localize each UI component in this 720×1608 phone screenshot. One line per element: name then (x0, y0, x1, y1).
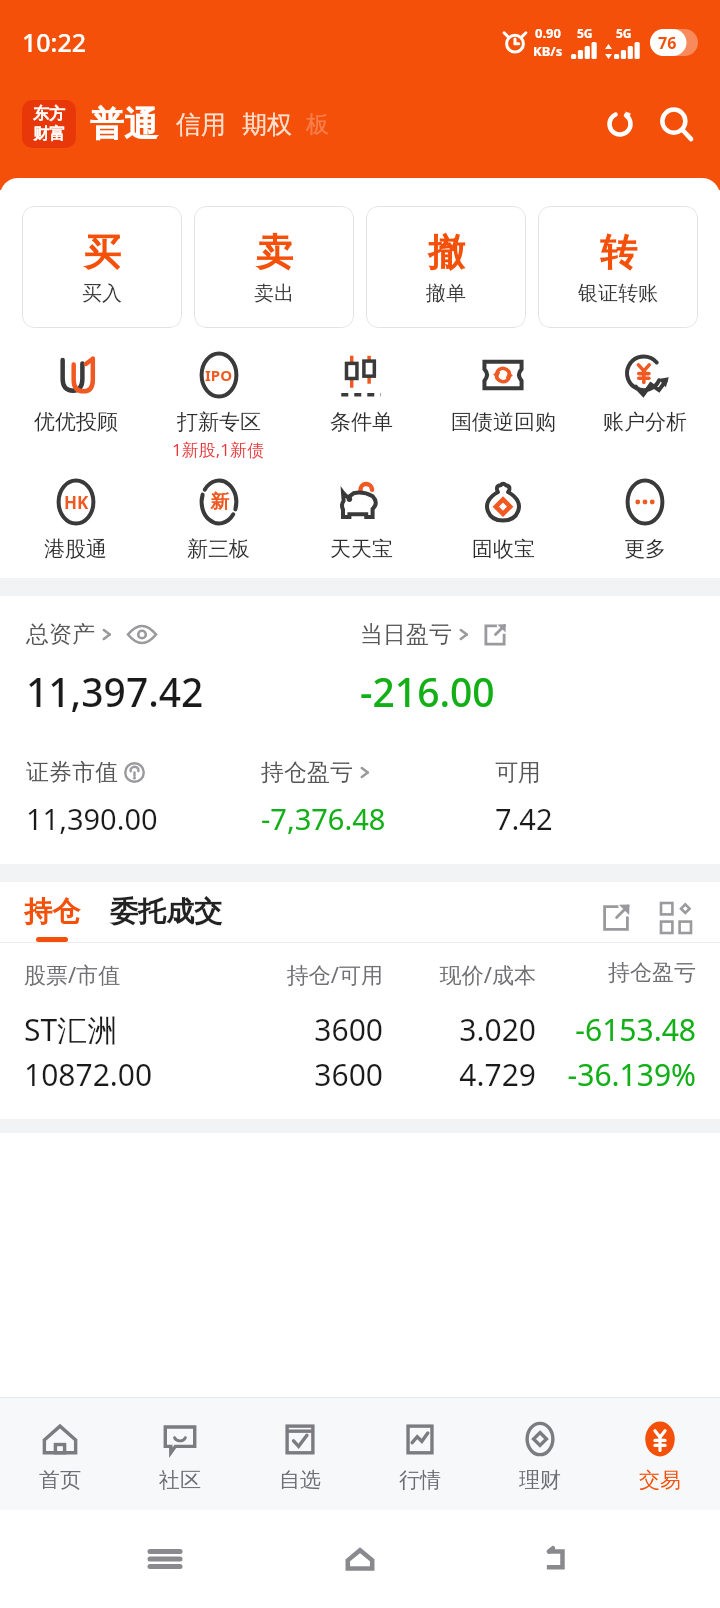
button[interactable]: ST汇洲 (0, 1009, 720, 1095)
staticText: 卖出 (254, 281, 294, 306)
staticText: 7.42 (495, 799, 553, 838)
staticText: 信用 (176, 109, 226, 140)
staticText: 买入 (82, 281, 122, 306)
staticText: 期权 (242, 109, 292, 140)
button[interactable]: 更多 (574, 467, 716, 568)
button[interactable]: 社区 (120, 1398, 240, 1510)
staticText: 固收宝 (472, 536, 535, 562)
staticText: 3600 (230, 1009, 383, 1050)
button[interactable]: 撤 (366, 206, 526, 328)
button[interactable]: HK (4, 467, 147, 568)
staticText: 打新专区 (177, 409, 261, 435)
button[interactable]: 行情 (360, 1398, 480, 1510)
button[interactable]: 证券市值 (26, 758, 145, 787)
staticText: 11,397.42 (26, 665, 204, 718)
staticText: 持仓/可用 (230, 959, 383, 989)
button[interactable]: 新 (147, 467, 290, 568)
staticText: 持仓 (24, 894, 80, 929)
staticText: -6153.48 (536, 1009, 696, 1050)
staticText: 东方 (33, 104, 65, 124)
button[interactable]: 条件单 (290, 340, 432, 466)
staticText: 证券市值 (26, 758, 118, 787)
button[interactable]: 持仓盈亏 (261, 758, 372, 787)
button[interactable]: 总资产 (26, 620, 156, 649)
staticText: 0.90 (535, 24, 561, 42)
button[interactable]: Search (654, 102, 698, 146)
staticText: 国债逆回购 (451, 409, 556, 435)
button[interactable]: 信用 (176, 109, 226, 140)
staticText: 新三板 (187, 536, 250, 562)
staticText: 条件单 (330, 409, 393, 435)
button[interactable]: Home (330, 1529, 390, 1589)
staticText: HK (64, 491, 89, 514)
staticText: 财富 (33, 124, 65, 144)
button[interactable]: 买 (22, 206, 182, 328)
staticText: 76 (658, 32, 677, 54)
staticText: 板 (306, 110, 329, 139)
staticText: 股票/市值 (24, 959, 230, 989)
staticText: 撤 (428, 229, 465, 276)
staticText: -36.139% (536, 1054, 696, 1095)
staticText: 10872.00 (24, 1054, 230, 1095)
staticText: -7,376.48 (261, 799, 386, 838)
button[interactable]: 东方 (22, 100, 76, 148)
button[interactable]: 板 (306, 110, 329, 139)
button[interactable]: Refresh (598, 102, 642, 146)
button[interactable]: 自选 (240, 1398, 360, 1510)
staticText: 当日盈亏 (360, 620, 452, 649)
staticText: 港股通 (44, 536, 107, 562)
staticText: 社区 (159, 1467, 201, 1493)
button[interactable]: 委托成交 (110, 894, 222, 942)
staticText: 账户分析 (603, 409, 687, 435)
staticText: 10:22 (22, 25, 87, 59)
staticText: 撤单 (426, 281, 466, 306)
staticText: 首页 (39, 1467, 81, 1493)
staticText: 更多 (624, 536, 666, 562)
button[interactable]: IPO (147, 340, 290, 467)
staticText: 买 (84, 229, 121, 276)
button[interactable]: 交易 (600, 1398, 720, 1510)
button[interactable]: 转 (538, 206, 698, 328)
staticText: 现价/成本 (383, 959, 536, 989)
button[interactable]: 理财 (480, 1398, 600, 1510)
button[interactable]: 持仓 (24, 894, 80, 942)
button[interactable]: Open external (596, 902, 636, 934)
button[interactable]: 国债逆回购 (432, 340, 574, 466)
button[interactable]: 天天宝 (290, 467, 432, 568)
staticText: 可用 (495, 758, 541, 787)
staticText: ST汇洲 (24, 1009, 230, 1050)
staticText: 3600 (230, 1054, 383, 1095)
button[interactable]: 期权 (242, 109, 292, 140)
staticText: 普通 (90, 103, 158, 146)
staticText: 自选 (279, 1467, 321, 1493)
staticText: 转 (600, 229, 637, 276)
staticText: 3.020 (383, 1009, 536, 1050)
staticText: 4.729 (383, 1054, 536, 1095)
staticText: 理财 (519, 1467, 561, 1493)
staticText: 11,390.00 (26, 799, 158, 838)
button[interactable]: Recents (135, 1529, 195, 1589)
button[interactable]: Back (525, 1529, 585, 1589)
staticText: IPO (205, 365, 233, 385)
staticText: 总资产 (26, 620, 95, 649)
button[interactable]: 优优投顾 (4, 340, 147, 466)
staticText: 卖 (256, 229, 293, 276)
button[interactable]: 卖 (194, 206, 354, 328)
staticText: 交易 (639, 1467, 681, 1493)
staticText: 5G (616, 25, 632, 41)
staticText: 天天宝 (330, 536, 393, 562)
button[interactable]: 当日盈亏 (360, 620, 507, 649)
staticText: 新 (210, 490, 229, 514)
staticText: 优优投顾 (34, 409, 118, 435)
button[interactable]: 固收宝 (432, 467, 574, 568)
button[interactable]: 普通 (90, 103, 158, 146)
button[interactable]: Grid view (656, 902, 696, 934)
staticText: 银证转账 (578, 281, 658, 306)
staticText: 持仓盈亏 (261, 758, 353, 787)
staticText: -216.00 (360, 665, 495, 718)
button[interactable]: 首页 (0, 1398, 120, 1510)
staticText: 1新股,1新债 (172, 438, 265, 461)
button[interactable]: 账户分析 (574, 340, 716, 466)
staticText: 委托成交 (110, 894, 222, 929)
staticText: 行情 (399, 1467, 441, 1493)
